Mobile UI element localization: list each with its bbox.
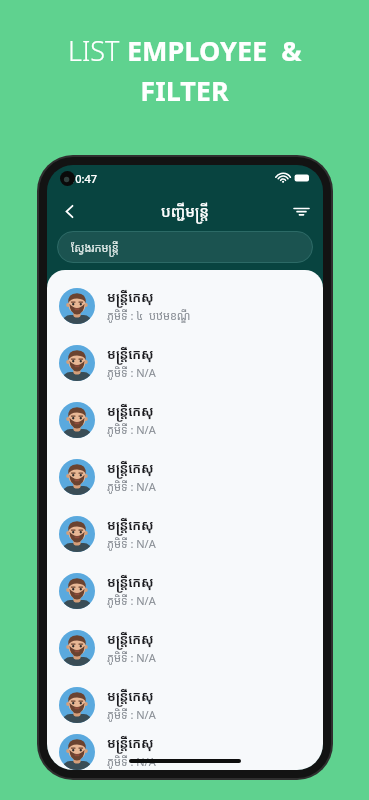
button[interactable]: មន្ត្រីកេសុ <box>47 334 323 391</box>
button[interactable]: មន្ត្រីកេសុ <box>47 277 323 334</box>
staticText: មន្ត្រីកេសុ <box>107 345 154 363</box>
button[interactable]: មន្ត្រីកេសុ <box>47 676 323 733</box>
staticText: មន្ត្រីកេសុ <box>107 630 154 648</box>
button[interactable]: មន្ត្រីកេសុ <box>47 619 323 676</box>
staticText: EMPLOYEE & <box>127 32 302 69</box>
button[interactable]: Back <box>52 194 86 228</box>
staticText: ភូមិទី : N/A <box>107 593 156 608</box>
staticText: ភូមិទី : N/A <box>107 650 156 665</box>
button[interactable]: មន្ត្រីកេសុ <box>47 562 323 619</box>
button[interactable]: មន្ត្រីកេសុ <box>47 733 323 770</box>
staticText: មន្ត្រីកេសុ <box>107 516 154 534</box>
staticText: មន្ត្រីកេសុ <box>107 734 154 752</box>
staticText: ភូមិទី : N/A <box>107 422 156 437</box>
staticText: មន្ត្រីកេសុ <box>107 687 154 705</box>
button[interactable]: មន្ត្រីកេសុ <box>47 391 323 448</box>
staticText: ភូមិទី : N/A <box>107 365 156 380</box>
button[interactable]: មន្ត្រីកេសុ <box>47 448 323 505</box>
staticText: ស្វែងរកមន្ត្រី <box>71 240 119 255</box>
staticText: ភូមិទី : ៤ បឋមខណ្ឌី <box>107 308 191 323</box>
staticText: FILTER <box>140 72 229 109</box>
staticText: បញ្ជីមន្ត្រី <box>161 201 209 221</box>
button[interactable]: Filter <box>284 194 318 228</box>
button[interactable]: ស្វែងរកមន្ត្រី <box>57 231 313 263</box>
staticText: មន្ត្រីកេសុ <box>107 459 154 477</box>
staticText: មន្ត្រីកេសុ <box>107 402 154 420</box>
staticText: ភូមិទី : N/A <box>107 754 156 769</box>
button[interactable]: មន្ត្រីកេសុ <box>47 505 323 562</box>
staticText: LIST <box>68 32 127 69</box>
staticText: ភូមិទី : N/A <box>107 479 156 494</box>
staticText: មន្ត្រីកេសុ <box>107 573 154 591</box>
staticText: ភូមិទី : N/A <box>107 536 156 551</box>
staticText: 10:47 <box>69 171 98 186</box>
staticText: មន្ត្រីកេសុ <box>107 288 154 306</box>
staticText: ភូមិទី : N/A <box>107 707 156 722</box>
